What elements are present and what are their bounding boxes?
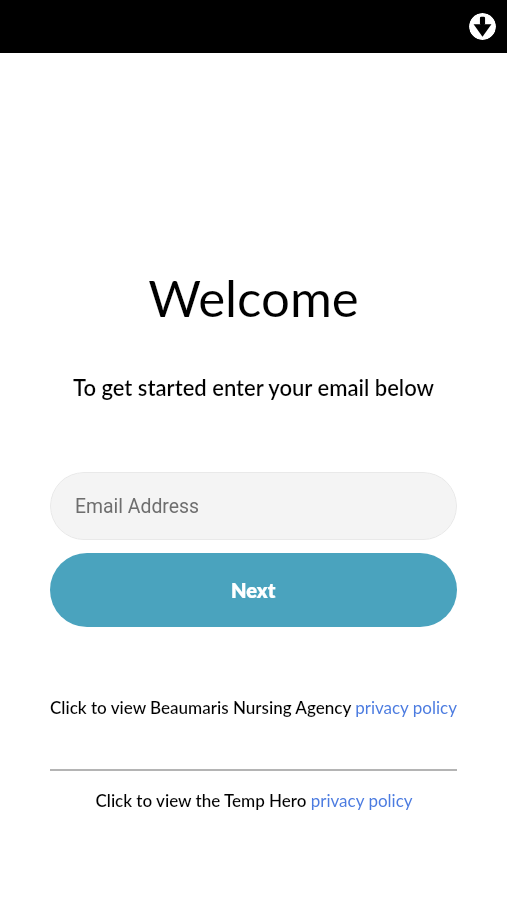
button[interactable]: Download — [469, 13, 496, 40]
staticText: Next — [231, 578, 276, 602]
staticText: Welcome — [0, 267, 507, 328]
staticText: Click to view the Temp Hero privacy poli… — [95, 790, 413, 810]
staticText: Click to view Beaumaris Nursing Agency p… — [50, 697, 457, 717]
button[interactable]: Click to view the Temp Hero privacy poli… — [95, 790, 413, 810]
button[interactable]: Click to view Beaumaris Nursing Agency p… — [50, 697, 457, 717]
button[interactable]: Next — [50, 553, 457, 627]
staticText: To get started enter your email below — [0, 374, 507, 400]
button[interactable]: Email Address — [50, 472, 457, 540]
staticText: Email Address — [75, 495, 200, 518]
